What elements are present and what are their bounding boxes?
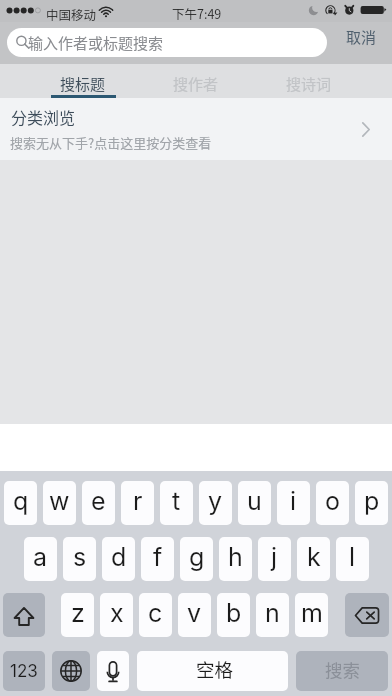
button[interactable]: m: [295, 593, 328, 637]
button[interactable]: 搜标题: [27, 64, 139, 98]
button[interactable]: Backspace: [345, 593, 389, 637]
button[interactable]: v: [178, 593, 211, 637]
staticText: t: [172, 486, 181, 516]
staticText: o: [325, 486, 340, 516]
button[interactable]: n: [256, 593, 289, 637]
staticText: 搜诗词: [286, 73, 332, 95]
button[interactable]: 搜索: [296, 651, 388, 691]
button[interactable]: o: [316, 481, 349, 525]
staticText: r: [133, 486, 143, 516]
button[interactable]: z: [61, 593, 94, 637]
button[interactable]: r: [121, 481, 154, 525]
staticText: 123: [10, 661, 38, 682]
staticText: m: [301, 598, 323, 628]
button[interactable]: k: [297, 537, 330, 581]
staticText: s: [73, 542, 87, 572]
button[interactable]: 搜诗词: [252, 64, 365, 98]
staticText: i: [290, 486, 297, 516]
button[interactable]: 取消: [346, 26, 377, 48]
button[interactable]: b: [217, 593, 250, 637]
staticText: 输入作者或标题搜索: [28, 32, 164, 54]
button[interactable]: a: [24, 537, 57, 581]
button[interactable]: Dictation: [97, 651, 129, 691]
button[interactable]: p: [355, 481, 388, 525]
staticText: 下午7:49: [172, 4, 222, 22]
staticText: b: [226, 598, 242, 628]
staticText: v: [187, 598, 202, 628]
staticText: 搜作者: [173, 73, 219, 95]
button[interactable]: 123: [3, 651, 45, 691]
staticText: 分类浏览: [11, 105, 76, 128]
button[interactable]: u: [238, 481, 271, 525]
button[interactable]: g: [180, 537, 213, 581]
button[interactable]: f: [141, 537, 174, 581]
button[interactable]: w: [43, 481, 76, 525]
staticText: g: [189, 542, 205, 572]
staticText: w: [49, 486, 70, 516]
button[interactable]: i: [277, 481, 310, 525]
staticText: 中国移动: [46, 5, 97, 23]
staticText: a: [33, 542, 48, 572]
staticText: 搜索无从下手?点击这里按分类查看: [10, 133, 212, 152]
staticText: x: [110, 598, 124, 628]
staticText: 搜标题: [60, 73, 106, 95]
staticText: 搜索: [325, 657, 360, 682]
button[interactable]: Switch keyboard: [52, 651, 90, 691]
button[interactable]: s: [63, 537, 96, 581]
staticText: z: [71, 598, 85, 628]
staticText: u: [247, 486, 262, 516]
staticText: l: [349, 542, 356, 572]
staticText: d: [111, 542, 127, 572]
staticText: 空格: [196, 656, 234, 683]
staticText: k: [307, 542, 321, 572]
button[interactable]: y: [199, 481, 232, 525]
staticText: p: [364, 486, 380, 516]
button[interactable]: 输入作者或标题搜索: [7, 28, 327, 57]
button[interactable]: Shift: [3, 593, 45, 637]
button[interactable]: 空格: [137, 651, 288, 691]
staticText: e: [91, 486, 106, 516]
button[interactable]: e: [82, 481, 115, 525]
button[interactable]: t: [160, 481, 193, 525]
button[interactable]: 分类浏览: [0, 98, 392, 160]
staticText: f: [153, 542, 163, 572]
button[interactable]: c: [139, 593, 172, 637]
staticText: h: [228, 542, 243, 572]
staticText: q: [13, 486, 29, 516]
button[interactable]: l: [336, 537, 369, 581]
button[interactable]: h: [219, 537, 252, 581]
staticText: j: [271, 542, 278, 572]
button[interactable]: x: [100, 593, 133, 637]
staticText: 取消: [346, 26, 377, 48]
staticText: n: [265, 598, 280, 628]
button[interactable]: d: [102, 537, 135, 581]
button[interactable]: q: [4, 481, 37, 525]
button[interactable]: j: [258, 537, 291, 581]
button[interactable]: 搜作者: [139, 64, 252, 98]
staticText: c: [148, 598, 163, 628]
staticText: y: [208, 486, 223, 516]
